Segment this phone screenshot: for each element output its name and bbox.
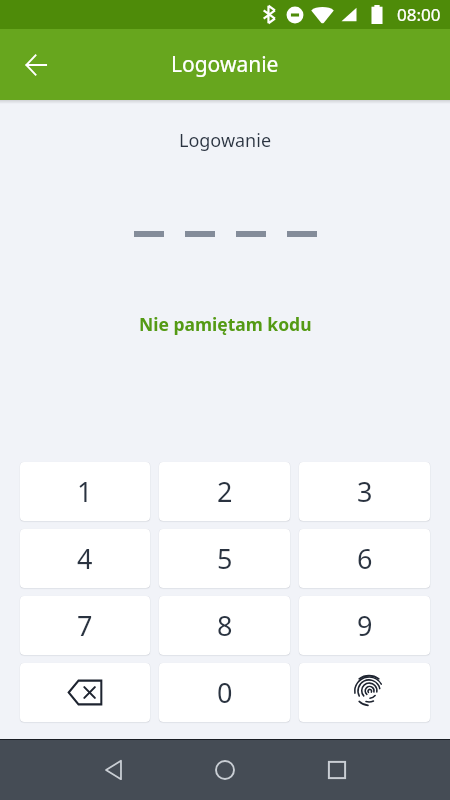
- button[interactable]: 4: [20, 529, 150, 588]
- staticText: 8: [217, 607, 233, 644]
- staticText: 4: [77, 540, 93, 577]
- button[interactable]: Fingerprint: [299, 663, 430, 722]
- button[interactable]: 8: [159, 596, 290, 655]
- button[interactable]: 2: [159, 462, 290, 521]
- button[interactable]: 6: [299, 529, 430, 588]
- staticText: 08:00: [397, 3, 441, 26]
- button[interactable]: Nie pamiętam kodu: [133, 309, 318, 339]
- button[interactable]: 5: [159, 529, 290, 588]
- button[interactable]: 3: [299, 462, 430, 521]
- button[interactable]: 9: [299, 596, 430, 655]
- button[interactable]: 7: [20, 596, 150, 655]
- staticText: 3: [357, 473, 373, 510]
- staticText: 9: [357, 607, 373, 644]
- button[interactable]: Recents: [307, 746, 367, 794]
- staticText: Logowanie: [0, 128, 450, 153]
- button[interactable]: Back: [83, 746, 143, 794]
- staticText: 0: [217, 674, 233, 711]
- staticText: 2: [217, 473, 233, 510]
- button[interactable]: Backspace: [20, 663, 150, 722]
- staticText: 1: [77, 473, 93, 510]
- staticText: Logowanie: [171, 50, 279, 79]
- staticText: 6: [357, 540, 373, 577]
- staticText: 5: [217, 540, 233, 577]
- staticText: Nie pamiętam kodu: [139, 312, 312, 336]
- button[interactable]: 0: [159, 663, 290, 722]
- button[interactable]: Home: [195, 746, 255, 794]
- button[interactable]: 1: [20, 462, 150, 521]
- button[interactable]: Back: [12, 41, 60, 89]
- staticText: 7: [77, 607, 93, 644]
